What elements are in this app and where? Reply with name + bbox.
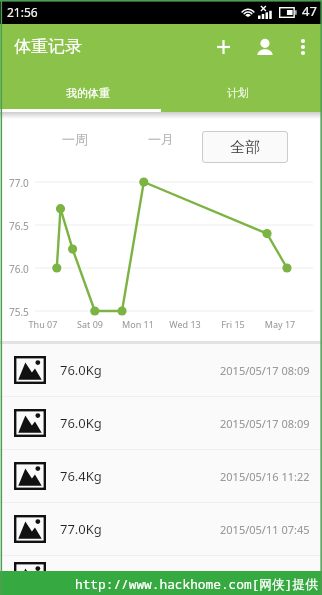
staticText: 76.0	[9, 262, 29, 276]
staticText: 76.0Kg	[60, 567, 102, 585]
staticText: Wed 13	[161, 318, 209, 330]
staticText: 76.5	[9, 219, 29, 233]
staticText: 计划	[227, 86, 249, 100]
staticText: 一月	[148, 131, 174, 147]
staticText: 2015/05/17 08:09	[220, 363, 310, 378]
staticText: Sat 09	[66, 318, 114, 330]
button[interactable]: 77.0Kg	[0, 503, 322, 555]
staticText: Thu 07	[19, 318, 67, 330]
staticText: 47	[302, 2, 317, 20]
staticText: 2015/05/10 09:10	[220, 568, 310, 583]
button[interactable]: Account	[245, 24, 284, 69]
button[interactable]: 全部	[202, 131, 288, 163]
staticText: 2015/05/16 11:22	[220, 469, 310, 484]
staticText: Mon 11	[114, 318, 162, 330]
staticText: 77.0	[9, 176, 29, 190]
staticText: 体重记录	[14, 36, 82, 57]
staticText: 全部	[230, 138, 260, 157]
button[interactable]: 一周	[41, 119, 109, 159]
staticText: 77.0Kg	[60, 520, 102, 538]
staticText: Fri 15	[209, 318, 257, 330]
button[interactable]: 76.0Kg	[0, 556, 322, 595]
staticText: May 17	[256, 318, 304, 330]
button[interactable]: 一月	[127, 119, 195, 159]
staticText: 一周	[62, 131, 88, 147]
button[interactable]: More options	[284, 24, 322, 69]
staticText: 我的体重	[66, 86, 110, 100]
button[interactable]: 76.0Kg	[0, 397, 322, 449]
button[interactable]: 76.0Kg	[0, 344, 322, 396]
staticText: 75.5	[9, 305, 29, 319]
button[interactable]: 我的体重	[0, 69, 161, 112]
staticText: 2015/05/17 08:09	[220, 416, 310, 431]
button[interactable]: 计划	[161, 69, 322, 112]
staticText: http://www.hackhome.com[网侠]提供	[75, 575, 319, 592]
button[interactable]: 76.4Kg	[0, 450, 322, 502]
staticText: 21:56	[7, 4, 38, 20]
staticText: 2015/05/11 07:45	[220, 522, 310, 537]
staticText: 76.4Kg	[60, 467, 102, 485]
button[interactable]: Add	[202, 24, 245, 69]
staticText: 76.0Kg	[60, 361, 102, 379]
staticText: 76.0Kg	[60, 414, 102, 432]
